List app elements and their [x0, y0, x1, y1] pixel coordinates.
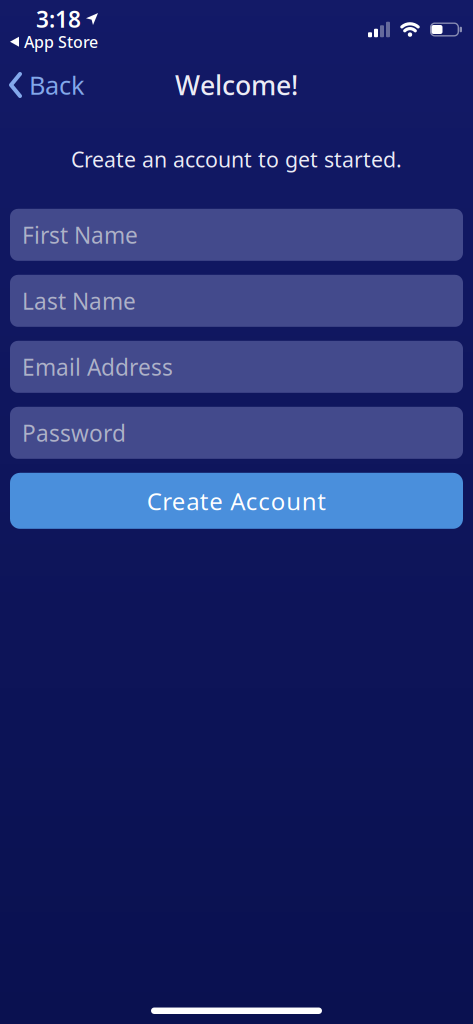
button[interactable]: Email Address	[10, 341, 463, 393]
button[interactable]: Password	[10, 407, 463, 459]
button[interactable]: Last Name	[10, 275, 463, 327]
staticText: First Name	[22, 220, 138, 250]
staticText: App Store	[24, 31, 98, 52]
staticText: Create an account to get started.	[71, 145, 402, 173]
staticText: 3:18	[36, 4, 81, 34]
staticText: Welcome!	[175, 67, 298, 103]
staticText: Email Address	[22, 352, 173, 382]
staticText: Last Name	[22, 286, 136, 316]
staticText: Create Account	[147, 485, 326, 517]
button[interactable]: Back to App Store	[10, 31, 98, 52]
button[interactable]: Create Account	[10, 473, 463, 529]
staticText: Back	[29, 68, 85, 102]
staticText: Password	[22, 418, 126, 448]
button[interactable]: Back	[9, 68, 85, 102]
button[interactable]: First Name	[10, 209, 463, 261]
